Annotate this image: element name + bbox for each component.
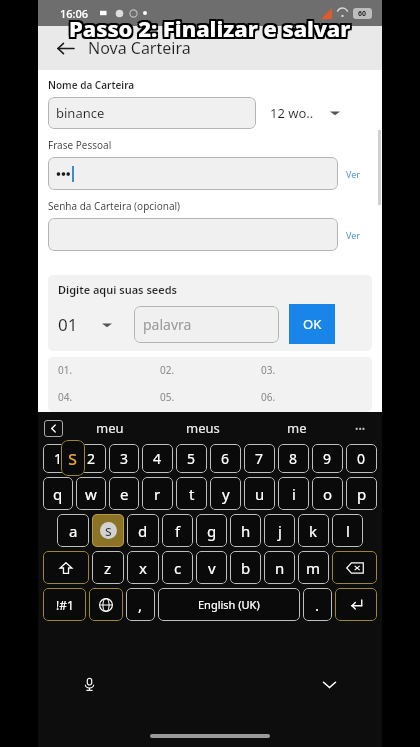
button[interactable]: English (UK) xyxy=(158,588,300,621)
button[interactable]: 5 xyxy=(176,444,207,473)
staticText: Digite aqui suas seeds xyxy=(58,282,177,297)
button[interactable]: h xyxy=(230,514,261,547)
button[interactable]: t xyxy=(176,477,207,510)
staticText: o xyxy=(323,484,333,504)
staticText: Passo 2: Finalizar e salvar xyxy=(69,13,351,43)
button[interactable]: a xyxy=(57,514,89,547)
button[interactable]: y xyxy=(210,477,241,510)
button[interactable]: b xyxy=(230,551,261,584)
staticText: Passo 2: Finalizar e salvar xyxy=(71,15,353,45)
button[interactable]: j xyxy=(264,514,295,547)
staticText: 02. xyxy=(160,363,175,377)
staticText: l xyxy=(346,521,350,541)
button[interactable]: 8 xyxy=(278,444,309,473)
button[interactable]: 12 wo.. xyxy=(270,104,340,122)
staticText: 8 xyxy=(289,449,298,468)
button[interactable]: binance xyxy=(48,97,256,129)
button[interactable]: l xyxy=(332,514,363,547)
button[interactable]: d xyxy=(127,514,159,547)
staticText: Passo 2: Finalizar e salvar xyxy=(67,11,349,41)
button[interactable]: Back xyxy=(48,31,82,65)
button[interactable]: c xyxy=(162,551,193,584)
staticText: 1 xyxy=(54,449,63,468)
staticText: w xyxy=(85,484,97,504)
staticText: English (UK) xyxy=(198,597,260,612)
staticText: Senha da Carteira (opcional) xyxy=(48,199,181,213)
button[interactable]: Hide keyboard xyxy=(316,671,342,697)
staticText: meu xyxy=(96,419,124,437)
button[interactable]: Ver xyxy=(346,168,361,180)
staticText: v xyxy=(208,558,216,578)
staticText: me xyxy=(287,419,307,437)
staticText: u xyxy=(255,484,265,504)
button[interactable]: ••• xyxy=(48,157,338,190)
button[interactable]: s xyxy=(92,514,124,547)
button[interactable]: 0 xyxy=(346,444,377,473)
staticText: 3 xyxy=(120,449,129,468)
staticText: 6 xyxy=(221,449,230,468)
button[interactable]: q xyxy=(43,477,73,510)
button[interactable]: meus xyxy=(156,412,250,444)
button[interactable]: Previous xyxy=(44,420,63,437)
staticText: 60 xyxy=(358,9,367,19)
staticText: 12 wo.. xyxy=(270,104,314,122)
button[interactable]: v xyxy=(196,551,227,584)
button[interactable]: w xyxy=(76,477,106,510)
button[interactable] xyxy=(48,218,338,251)
staticText: 9 xyxy=(323,449,332,468)
button[interactable]: k xyxy=(298,514,329,547)
staticText: Passo 2: Finalizar e salvar xyxy=(67,13,349,43)
staticText: a xyxy=(69,521,78,541)
button[interactable]: 4 xyxy=(142,444,173,473)
button[interactable]: key xyxy=(43,551,89,584)
button[interactable]: More xyxy=(344,412,376,444)
button[interactable]: o xyxy=(312,477,343,510)
button[interactable]: me xyxy=(250,412,344,444)
button[interactable]: OK xyxy=(289,304,335,344)
staticText: ••• xyxy=(355,422,366,434)
button[interactable]: Voice input xyxy=(76,671,102,697)
button[interactable]: m xyxy=(298,551,329,584)
button[interactable]: i xyxy=(278,477,309,510)
button[interactable]: . xyxy=(303,588,332,621)
button[interactable]: 1 xyxy=(43,444,73,473)
button[interactable]: key xyxy=(332,551,377,584)
button[interactable]: Ver xyxy=(346,229,361,241)
button[interactable]: meu xyxy=(63,412,156,444)
button[interactable]: palavra xyxy=(134,306,279,343)
staticText: 5 xyxy=(187,449,196,468)
button[interactable]: key xyxy=(335,588,377,621)
button[interactable]: 2 xyxy=(76,444,106,473)
button[interactable]: r xyxy=(142,477,173,510)
staticText: m xyxy=(306,558,321,578)
button[interactable]: 3 xyxy=(109,444,139,473)
staticText: i xyxy=(292,484,296,504)
button[interactable]: !#1 xyxy=(43,588,86,621)
staticText: c xyxy=(174,558,182,578)
button[interactable]: p xyxy=(346,477,377,510)
button[interactable]: , xyxy=(126,588,155,621)
staticText: s xyxy=(68,445,78,471)
button[interactable]: 6 xyxy=(210,444,241,473)
button[interactable]: e xyxy=(109,477,139,510)
button[interactable]: g xyxy=(196,514,227,547)
staticText: 16:06 xyxy=(60,6,89,21)
button[interactable]: z xyxy=(92,551,124,584)
button[interactable]: 01 xyxy=(58,313,112,336)
staticText: 01. xyxy=(58,363,73,377)
button[interactable]: n xyxy=(264,551,295,584)
staticText: , xyxy=(138,595,143,615)
staticText: 03. xyxy=(261,363,276,377)
button[interactable]: x xyxy=(127,551,159,584)
button[interactable]: u xyxy=(244,477,275,510)
staticText: . xyxy=(315,595,320,615)
staticText: e xyxy=(120,484,129,504)
staticText: t xyxy=(189,484,195,504)
staticText: y xyxy=(222,484,230,504)
button[interactable]: key xyxy=(89,588,123,621)
button[interactable]: f xyxy=(162,514,193,547)
button[interactable]: 7 xyxy=(244,444,275,473)
staticText: p xyxy=(357,484,367,504)
button[interactable]: 9 xyxy=(312,444,343,473)
staticText: Passo 2: Finalizar e salvar xyxy=(69,11,351,41)
